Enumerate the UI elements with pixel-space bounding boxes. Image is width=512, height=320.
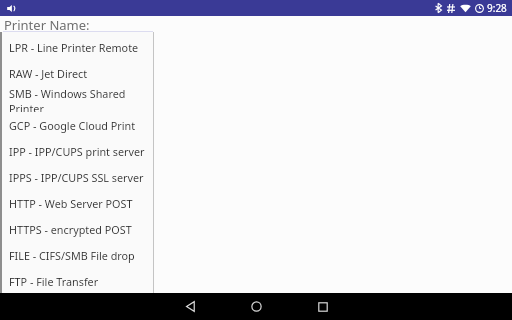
- staticText: FILE - CIFS/SMB File drop: [9, 248, 135, 263]
- staticText: IPPS - IPP/CUPS SSL server: [9, 170, 144, 185]
- button[interactable]: SMB - Windows Shared Printer: [2, 86, 154, 112]
- button[interactable]: Home: [236, 293, 276, 320]
- button[interactable]: myprinter: [3, 31, 153, 44]
- button[interactable]: HTTPS - encrypted POST: [2, 216, 154, 242]
- staticText: LPR - Line Printer Remote: [9, 40, 139, 55]
- staticText: SMB - Windows Shared Printer: [9, 86, 154, 112]
- button[interactable]: HTTP - Web Server POST: [2, 190, 154, 216]
- staticText: HTTPS - encrypted POST: [9, 222, 132, 237]
- staticText: FTP - File Transfer: [9, 274, 99, 289]
- staticText: HTTP - Web Server POST: [9, 196, 133, 211]
- staticText: IPP - IPP/CUPS print server: [9, 144, 145, 159]
- button[interactable]: IPP - IPP/CUPS print server: [2, 138, 154, 164]
- button[interactable]: FTP - File Transfer: [2, 268, 154, 294]
- button[interactable]: Back: [170, 293, 210, 320]
- staticText: GCP - Google Cloud Print: [9, 118, 136, 133]
- button[interactable]: LPR - Line Printer Remote: [2, 34, 154, 60]
- button[interactable]: GCP - Google Cloud Print: [2, 112, 154, 138]
- staticText: RAW - Jet Direct: [9, 66, 88, 81]
- button[interactable]: FILE - CIFS/SMB File drop: [2, 242, 154, 268]
- button[interactable]: Recent apps: [303, 293, 343, 320]
- staticText: 9:28: [487, 1, 507, 15]
- staticText: Printer Name:: [4, 16, 90, 33]
- button[interactable]: IPPS - IPP/CUPS SSL server: [2, 164, 154, 190]
- staticText: myprinter: [8, 31, 58, 44]
- button[interactable]: RAW - Jet Direct: [2, 60, 154, 86]
